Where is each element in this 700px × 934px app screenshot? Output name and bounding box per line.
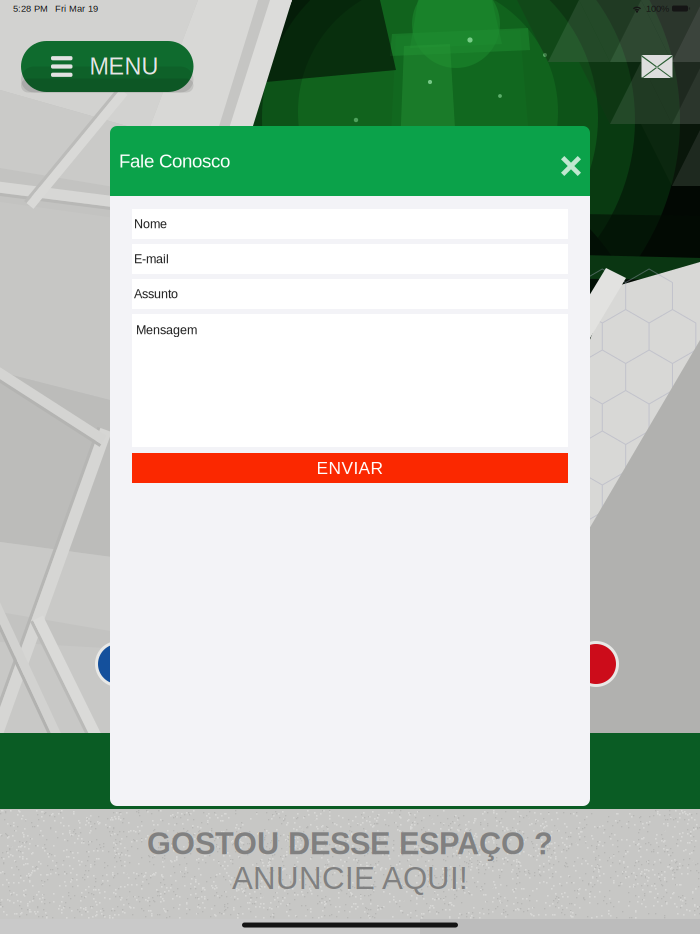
button[interactable]: MENU [21, 41, 193, 92]
button[interactable]: Nome [132, 209, 568, 239]
staticText: E-mail [134, 252, 169, 266]
button[interactable]: Close [552, 139, 590, 183]
staticText: 5:28 PM [13, 3, 48, 14]
staticText: Fale Conosco [119, 151, 230, 171]
staticText: ENVIAR [316, 458, 383, 478]
staticText: 100% [646, 3, 669, 14]
staticText: Fri Mar 19 [55, 3, 98, 14]
staticText: Nome [134, 217, 167, 231]
button[interactable]: Mensagem [132, 314, 568, 447]
staticText: ANUNCIE AQUI! [232, 861, 468, 896]
button[interactable]: Assunto [132, 279, 568, 309]
staticText: GOSTOU DESSE ESPAÇO ? [147, 826, 553, 861]
staticText: MENU [89, 53, 158, 80]
button[interactable]: ENVIAR [132, 453, 568, 483]
staticText: Assunto [134, 287, 178, 301]
button[interactable]: Messages [636, 46, 678, 86]
button[interactable]: E-mail [132, 244, 568, 274]
staticText: Mensagem [136, 323, 197, 337]
